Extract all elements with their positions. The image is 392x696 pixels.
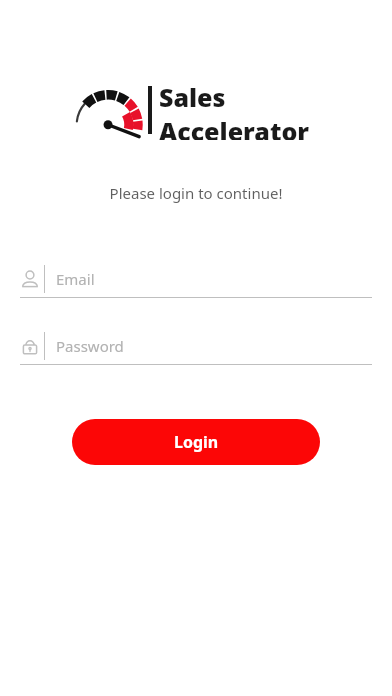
other: Email bbox=[20, 269, 40, 289]
staticText: Accelerator bbox=[159, 114, 310, 140]
staticText: Email bbox=[56, 269, 95, 289]
other: Password bbox=[20, 336, 40, 356]
staticText: Login bbox=[174, 431, 219, 453]
button[interactable]: Login bbox=[72, 419, 320, 465]
staticText: Sales bbox=[159, 80, 226, 114]
staticText: Please login to continue! bbox=[0, 183, 392, 203]
button[interactable]: Password bbox=[0, 329, 392, 365]
staticText: Password bbox=[56, 336, 124, 356]
button[interactable]: Email bbox=[0, 262, 392, 298]
